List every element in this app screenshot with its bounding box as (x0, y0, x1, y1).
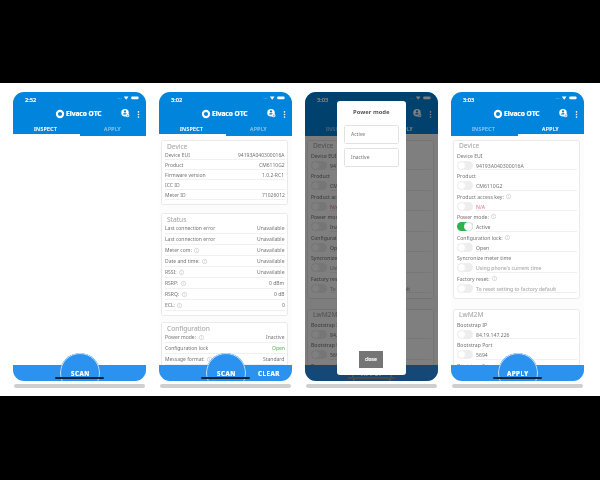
staticText: 94193A040300016A (238, 152, 285, 159)
button[interactable]: Message format: (161, 354, 288, 365)
button[interactable]: APPLY (517, 121, 584, 136)
staticText: Device (313, 141, 334, 150)
button[interactable]: APPLY (352, 353, 392, 381)
button[interactable]: Inactive (344, 148, 399, 167)
button[interactable]: CLEAR (254, 365, 284, 381)
button[interactable]: Last connection error (161, 223, 288, 234)
button[interactable]: Product (307, 170, 434, 191)
button[interactable]: Syncronize meter time (307, 252, 434, 273)
staticText: APPLY (250, 125, 267, 132)
staticText: Open (330, 244, 344, 251)
button[interactable]: Last connection error (161, 234, 288, 245)
button[interactable]: Configuration lock: (453, 232, 580, 252)
button[interactable]: Firmware version (161, 170, 288, 180)
button[interactable]: APPLY (371, 121, 438, 136)
staticText: Open (272, 345, 285, 352)
staticText: 84.19.147.226 (330, 331, 364, 338)
staticText: 0 dBm (269, 280, 285, 287)
button[interactable]: RSRQ: (161, 289, 288, 300)
button[interactable]: Product (453, 170, 580, 191)
button[interactable]: Meter ID (161, 190, 288, 200)
button[interactable]: Device EUI (161, 150, 288, 160)
button[interactable]: close (359, 351, 383, 368)
button[interactable]: Bootstrap Port (453, 339, 580, 360)
staticText: Product access key: (457, 193, 504, 200)
staticText: SCAN (217, 369, 236, 377)
button[interactable]: SCAN (206, 353, 246, 381)
button[interactable]: Device EUI (307, 150, 434, 170)
staticText: APPLY (104, 125, 121, 132)
button[interactable]: APPLY (498, 353, 538, 381)
button[interactable]: INSPECT (13, 121, 79, 136)
button[interactable]: More options (570, 108, 582, 120)
staticText: N/A (476, 203, 486, 210)
button[interactable]: RSRP: (161, 278, 288, 289)
staticText: Standard (263, 356, 285, 363)
staticText: INSPECT (34, 125, 58, 132)
staticText: 71026012 (262, 192, 285, 199)
staticText: Configuration (167, 324, 210, 333)
staticText: CM6110G2 (476, 182, 503, 189)
staticText: Device (459, 141, 480, 150)
button[interactable]: APPLY (225, 121, 292, 136)
button[interactable]: More options (278, 108, 290, 120)
button[interactable]: Product access key: (453, 191, 580, 211)
button[interactable]: Power mode: (307, 211, 434, 232)
staticText: Bootstrap Secret (311, 362, 352, 369)
button[interactable]: Account (558, 108, 570, 120)
staticText: Unavailable (257, 247, 285, 254)
staticText: Power mode: (457, 213, 489, 220)
staticText: close (365, 356, 377, 363)
button[interactable]: Power mode: (453, 211, 580, 232)
button[interactable]: Factory reset: (307, 273, 434, 293)
button[interactable]: Account (120, 108, 132, 120)
button[interactable]: INSPECT (305, 121, 371, 136)
button[interactable]: ECL: (161, 300, 288, 311)
staticText: Bootstrap IP (311, 321, 341, 328)
staticText: Configuration lock: (457, 234, 503, 241)
button[interactable]: Account (266, 108, 278, 120)
button[interactable]: Factory reset: (453, 273, 580, 293)
button[interactable]: Configuration lock (161, 343, 288, 354)
button[interactable]: SCAN (60, 353, 100, 381)
button[interactable]: Bootstrap Secret (307, 360, 434, 380)
button[interactable]: Power mode: (161, 332, 288, 343)
button[interactable]: Device EUI (453, 150, 580, 170)
button[interactable]: INSPECT (159, 121, 225, 136)
button[interactable]: Active (344, 125, 399, 144)
button[interactable]: Bootstrap IP (453, 319, 580, 339)
staticText: Device EUI (311, 152, 337, 159)
staticText: 2:52 (25, 96, 37, 104)
staticText: RSRQ: (165, 291, 180, 298)
staticText: Syncronize meter time (311, 254, 366, 261)
button[interactable]: Product access key: (307, 191, 434, 211)
button[interactable]: Syncronize meter time (453, 252, 580, 273)
button[interactable]: Bootstrap IP (307, 319, 434, 339)
button[interactable]: ICC ID (161, 180, 288, 190)
staticText: To reset setting to factory default (330, 285, 411, 292)
button[interactable]: Product (161, 160, 288, 170)
staticText: Using phone's current time (476, 264, 542, 271)
button[interactable]: Configuration lock: (307, 232, 434, 252)
button[interactable]: Bootstrap Port (307, 339, 434, 360)
staticText: LwM2M (459, 310, 484, 319)
staticText: 1.0.2-RC1 (262, 172, 285, 179)
staticText: APPLY (361, 369, 383, 377)
button[interactable]: Bootstrap Secret (453, 360, 580, 380)
staticText: Factory reset: (311, 275, 344, 282)
staticText: Inactive (351, 154, 370, 161)
button[interactable]: Account (412, 108, 424, 120)
button[interactable]: RSSI: (161, 267, 288, 278)
button[interactable]: More options (424, 108, 436, 120)
staticText: 94193A040300016A (330, 162, 378, 169)
button[interactable]: Meter com: (161, 245, 288, 256)
button[interactable]: INSPECT (451, 121, 517, 136)
staticText: Elvaco OTC (358, 109, 394, 118)
button[interactable]: Date and time: (161, 256, 288, 267)
staticText: Elvaco OTC (66, 109, 102, 118)
staticText: Configuration lock (165, 345, 209, 352)
button[interactable]: APPLY (79, 121, 146, 136)
button[interactable]: More options (132, 108, 144, 120)
staticText: Power mode: (165, 334, 197, 341)
staticText: Device EUI (457, 152, 483, 159)
